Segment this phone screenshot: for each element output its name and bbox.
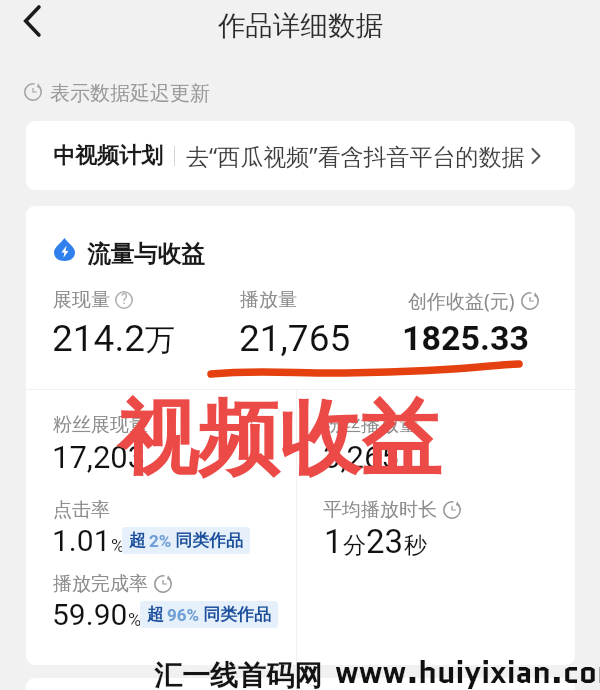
button[interactable]: Back: [8, 0, 56, 42]
staticText: 表示数据延迟更新: [50, 81, 210, 106]
staticText: 视频收益: [117, 388, 441, 490]
staticText: 3,265: [323, 439, 399, 475]
staticText: 1.01: [52, 523, 111, 558]
staticText: 分: [343, 531, 366, 560]
staticText: www.huiyixian.com: [335, 650, 600, 690]
staticText: 粉丝播放量: [323, 413, 418, 437]
staticText: 播放完成率: [53, 572, 148, 596]
staticText: 汇一线首码网: [154, 658, 322, 690]
staticText: 23: [366, 522, 404, 561]
staticText: 2%: [149, 531, 172, 551]
staticText: 创作收益(元): [408, 288, 515, 314]
staticText: 展现量: [53, 288, 110, 312]
staticText: 万: [145, 321, 175, 359]
staticText: 214.2: [52, 317, 145, 360]
staticText: 同类作品: [175, 530, 243, 551]
staticText: 96%: [167, 605, 200, 625]
staticText: %: [111, 535, 125, 556]
staticText: 秒: [404, 531, 427, 560]
staticText: 1: [324, 522, 343, 561]
staticText: 1825.33: [402, 318, 529, 358]
staticText: 作品详细数据: [218, 9, 383, 44]
staticText: 中视频计划: [53, 142, 163, 170]
staticText: 21,765: [239, 317, 351, 360]
staticText: 超: [147, 604, 164, 625]
staticText: 同类作品: [203, 604, 271, 625]
staticText: 平均播放时长: [323, 498, 437, 522]
staticText: ?: [121, 291, 128, 307]
staticText: 点击率: [53, 498, 110, 522]
staticText: 流量与收益: [87, 239, 205, 269]
staticText: 去“西瓜视频”看含抖音平台的数据: [186, 140, 525, 171]
staticText: 播放量: [240, 288, 297, 312]
staticText: %: [128, 609, 142, 630]
button[interactable]: 中视频计划: [26, 121, 575, 190]
staticText: 超: [129, 530, 146, 551]
staticText: 粉丝展现量: [53, 413, 148, 437]
staticText: 17,203: [52, 439, 146, 475]
staticText: 59.90: [52, 597, 128, 632]
